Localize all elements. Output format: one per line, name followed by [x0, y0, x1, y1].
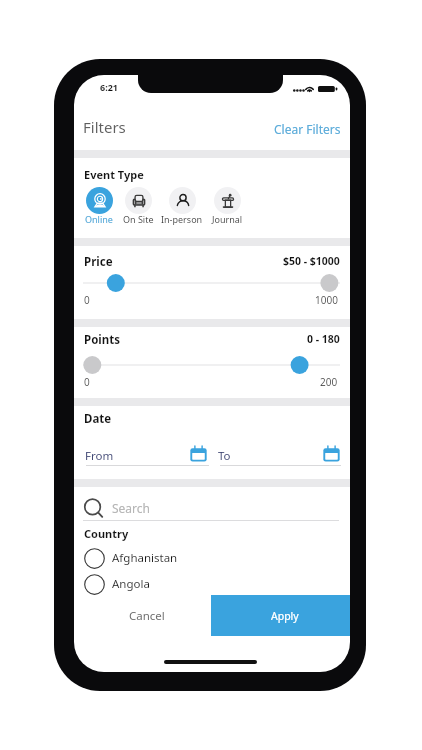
other: Pick From date [189, 444, 208, 463]
staticText: 1000 [315, 293, 338, 307]
staticText: 0 [84, 375, 90, 389]
button[interactable]: In-person [158, 187, 206, 226]
other: Search [84, 498, 103, 517]
staticText: 0 - 180 [307, 332, 340, 346]
button[interactable]: On Site [114, 187, 162, 226]
button[interactable]: Clear Filters [269, 116, 346, 142]
staticText: Event Type [84, 167, 144, 182]
staticText: Country [84, 526, 129, 541]
staticText: In-person [161, 213, 203, 225]
staticText: From [85, 448, 114, 464]
staticText: Online [85, 213, 113, 225]
other: Pick To date [322, 444, 341, 463]
staticText: Price [84, 254, 113, 270]
staticText: 0 [84, 293, 90, 307]
staticText: 6:21 [100, 81, 118, 93]
staticText: Search [112, 500, 150, 516]
staticText: Journal [212, 213, 243, 225]
staticText: On Site [123, 213, 154, 225]
button[interactable]: Journal [203, 187, 251, 226]
button[interactable]: Angola [84, 572, 342, 596]
button[interactable]: Cancel [120, 595, 173, 636]
staticText: 200 [320, 375, 338, 389]
button[interactable]: To [220, 443, 341, 466]
staticText: Angola [112, 576, 150, 592]
staticText: Clear Filters [274, 121, 341, 137]
staticText: $50 - $1000 [283, 254, 340, 268]
button[interactable]: From [86, 443, 209, 466]
staticText: Afghanistan [112, 550, 178, 566]
staticText: Apply [271, 609, 299, 623]
staticText: To [218, 448, 231, 464]
staticText: Filters [83, 117, 126, 137]
button[interactable]: Online [75, 187, 123, 226]
button[interactable]: Apply [211, 595, 350, 636]
staticText: Cancel [129, 608, 165, 624]
button[interactable]: Afghanistan [84, 546, 342, 570]
staticText: Date [84, 411, 112, 427]
staticText: Points [84, 332, 121, 348]
